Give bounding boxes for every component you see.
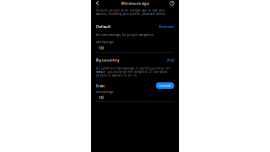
staticText: 18 [98, 95, 102, 100]
staticText: Minimum age [121, 1, 149, 6]
button[interactable]: Remove [159, 24, 174, 29]
staticText: Minimum age [96, 40, 114, 44]
staticText: Add [167, 57, 174, 63]
staticText: Require people to be a certain age to ow… [96, 9, 166, 16]
button[interactable]: Add [167, 57, 174, 63]
staticText: Minimum age [96, 90, 114, 94]
staticText: 18 [98, 45, 102, 50]
staticText: Set a minimum age for people everywhere. [96, 33, 155, 37]
button[interactable]: Help [167, 0, 179, 7]
button[interactable]: Remove [156, 82, 174, 89]
staticText: Iran [96, 83, 105, 88]
staticText: Set a different minimum age in specific … [96, 67, 170, 77]
staticText: Remove [159, 84, 171, 87]
staticText: ? [171, 1, 173, 6]
staticText: By country [96, 57, 119, 63]
button[interactable]: Back [91, 0, 101, 7]
staticText: Remove [159, 24, 174, 29]
staticText: Default [96, 24, 111, 29]
